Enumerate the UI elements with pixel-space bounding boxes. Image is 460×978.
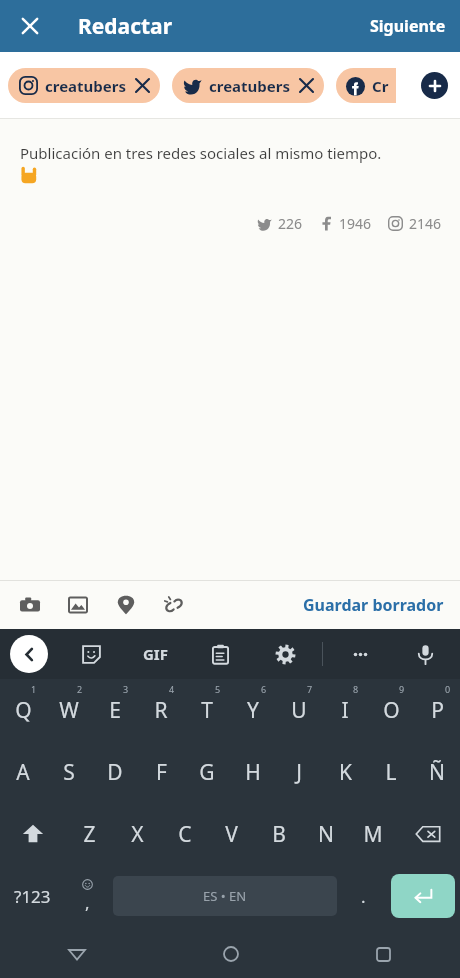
button[interactable]: C bbox=[161, 803, 208, 865]
staticText: Siguiente bbox=[370, 15, 446, 37]
button[interactable]: E bbox=[92, 679, 138, 741]
button[interactable]: Microfono bbox=[404, 633, 446, 675]
button[interactable]: L bbox=[368, 741, 414, 803]
button[interactable]: Portapapeles bbox=[199, 633, 241, 675]
staticText: 3 bbox=[123, 683, 129, 695]
button[interactable]: Recientes bbox=[307, 930, 460, 978]
staticText: V bbox=[225, 820, 238, 849]
staticText: 226 bbox=[278, 214, 303, 233]
button[interactable]: Siguiente bbox=[356, 7, 460, 45]
button[interactable]: Guardar borrador bbox=[287, 586, 460, 624]
staticText: Z bbox=[83, 820, 96, 849]
button[interactable]: GIF bbox=[134, 633, 176, 675]
staticText: M bbox=[363, 820, 383, 849]
staticText: creatubers bbox=[45, 76, 127, 96]
staticText: S bbox=[63, 758, 75, 787]
staticText: K bbox=[339, 758, 352, 787]
button[interactable]: Ajustes bbox=[264, 633, 306, 675]
button[interactable]: A bbox=[0, 741, 46, 803]
staticText: O bbox=[383, 696, 400, 725]
button[interactable]: ES • EN bbox=[113, 876, 337, 916]
staticText: I bbox=[341, 696, 349, 725]
button[interactable]: Imagen bbox=[54, 581, 102, 629]
staticText: . bbox=[361, 885, 366, 908]
staticText: Ñ bbox=[429, 758, 445, 787]
button[interactable]: J bbox=[276, 741, 322, 803]
button[interactable]: Q bbox=[0, 679, 46, 741]
button[interactable]: K bbox=[322, 741, 368, 803]
staticText: ES • EN bbox=[203, 887, 247, 905]
button[interactable]: F bbox=[138, 741, 184, 803]
button[interactable]: M bbox=[349, 803, 396, 865]
button[interactable]: Atras bbox=[10, 635, 48, 673]
button[interactable]: creatubers bbox=[8, 68, 160, 103]
button[interactable]: Borrar bbox=[396, 803, 460, 865]
staticText: W bbox=[59, 696, 79, 725]
button[interactable]: Ñ bbox=[414, 741, 460, 803]
button[interactable]: Adhesivos bbox=[70, 633, 112, 675]
button[interactable]: creatubers bbox=[172, 68, 324, 103]
button[interactable]: Ubicacion bbox=[102, 581, 150, 629]
button[interactable]: Z bbox=[65, 803, 113, 865]
button[interactable]: I bbox=[322, 679, 368, 741]
staticText: 4 bbox=[169, 683, 175, 695]
button[interactable]: T bbox=[184, 679, 230, 741]
staticText: Publicación en tres redes sociales al mi… bbox=[20, 143, 382, 163]
staticText: T bbox=[201, 696, 213, 725]
staticText: D bbox=[107, 758, 123, 787]
staticText: 1946 bbox=[339, 214, 372, 233]
staticText: Y bbox=[247, 696, 259, 725]
button[interactable]: Coma y emoji bbox=[64, 865, 110, 927]
staticText: F bbox=[156, 758, 167, 787]
button[interactable]: U bbox=[276, 679, 322, 741]
button[interactable]: Enlace bbox=[150, 581, 198, 629]
button[interactable]: P bbox=[414, 679, 460, 741]
staticText: Redactar bbox=[78, 12, 173, 41]
button[interactable]: D bbox=[92, 741, 138, 803]
staticText: R bbox=[154, 696, 168, 725]
staticText: Q bbox=[15, 696, 32, 725]
button[interactable]: Anadir cuenta bbox=[421, 72, 448, 99]
staticText: 7 bbox=[307, 683, 313, 695]
staticText: 2 bbox=[77, 683, 83, 695]
staticText: P bbox=[431, 696, 444, 725]
button[interactable]: G bbox=[184, 741, 230, 803]
staticText: J bbox=[296, 758, 302, 787]
staticText: 0 bbox=[445, 683, 451, 695]
staticText: 9 bbox=[399, 683, 405, 695]
button[interactable]: Y bbox=[230, 679, 276, 741]
button[interactable]: Mas opciones bbox=[339, 633, 381, 675]
button[interactable]: H bbox=[230, 741, 276, 803]
button[interactable]: . bbox=[340, 865, 386, 927]
button[interactable]: V bbox=[208, 803, 255, 865]
button[interactable]: R bbox=[138, 679, 184, 741]
staticText: N bbox=[318, 820, 334, 849]
button[interactable]: Cerrar bbox=[8, 4, 52, 48]
staticText: creatubers bbox=[209, 76, 291, 96]
button[interactable]: O bbox=[368, 679, 414, 741]
staticText: GIF bbox=[143, 644, 168, 664]
button[interactable]: Intro bbox=[391, 874, 455, 918]
button[interactable]: Atras bbox=[0, 930, 154, 978]
staticText: ?123 bbox=[14, 885, 51, 908]
staticText: A bbox=[16, 758, 30, 787]
button[interactable]: Mayusculas bbox=[0, 803, 65, 865]
staticText: L bbox=[385, 758, 397, 787]
staticText: H bbox=[245, 758, 261, 787]
button[interactable]: X bbox=[113, 803, 161, 865]
button[interactable]: N bbox=[302, 803, 349, 865]
staticText: 6 bbox=[261, 683, 267, 695]
button[interactable]: B bbox=[255, 803, 302, 865]
staticText: , bbox=[85, 891, 90, 914]
button[interactable]: W bbox=[46, 679, 92, 741]
button[interactable]: S bbox=[46, 741, 92, 803]
staticText: 8 bbox=[353, 683, 359, 695]
staticText: G bbox=[199, 758, 215, 787]
staticText: U bbox=[291, 696, 307, 725]
button[interactable]: Inicio bbox=[154, 930, 307, 978]
staticText: E bbox=[109, 696, 121, 725]
button[interactable]: Cr bbox=[336, 68, 396, 103]
staticText: C bbox=[178, 820, 192, 849]
button[interactable]: Camara bbox=[6, 581, 54, 629]
button[interactable]: ?123 bbox=[0, 865, 64, 927]
